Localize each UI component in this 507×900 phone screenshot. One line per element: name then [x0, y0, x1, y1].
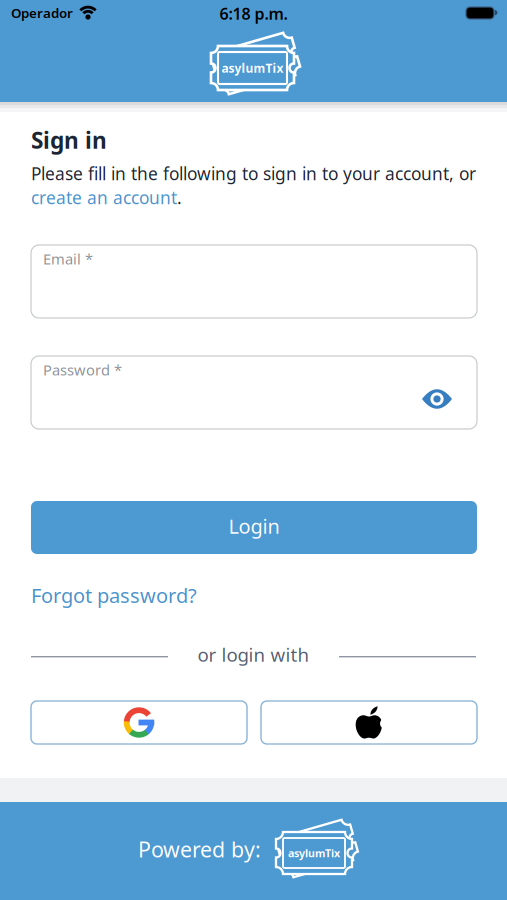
staticText: Password * [43, 360, 122, 379]
staticText: Powered by: [138, 835, 261, 863]
staticText: Operador [11, 4, 73, 22]
staticText: asylumTix [288, 846, 340, 860]
staticText: create an account [31, 186, 177, 209]
staticText: Forgot password? [31, 582, 197, 609]
button[interactable] [261, 701, 477, 744]
staticText: Email * [43, 249, 93, 268]
staticText: or login with [197, 642, 309, 667]
button[interactable]: create an account [31, 186, 177, 209]
button[interactable] [420, 387, 454, 411]
staticText: Please fill in the following to sign in … [31, 162, 476, 185]
staticText: 6:18 p.m. [219, 3, 287, 24]
button[interactable]: Forgot password? [31, 582, 197, 609]
staticText: . [177, 186, 182, 209]
staticText: asylumTix [221, 60, 283, 76]
button[interactable]: Login [31, 501, 477, 554]
staticText: Login [228, 513, 279, 539]
button[interactable] [31, 701, 247, 744]
staticText: Sign in [31, 125, 107, 155]
